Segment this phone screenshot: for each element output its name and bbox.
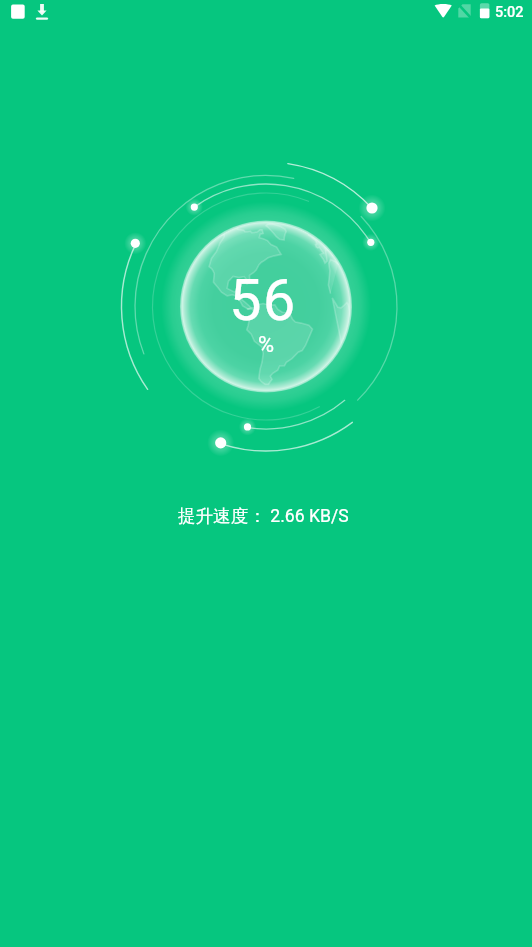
- staticText: 56: [229, 266, 297, 334]
- staticText: 提升速度： 2.66 KB/S: [178, 505, 349, 527]
- staticText: 5:02: [495, 4, 524, 21]
- staticText: %: [258, 332, 275, 358]
